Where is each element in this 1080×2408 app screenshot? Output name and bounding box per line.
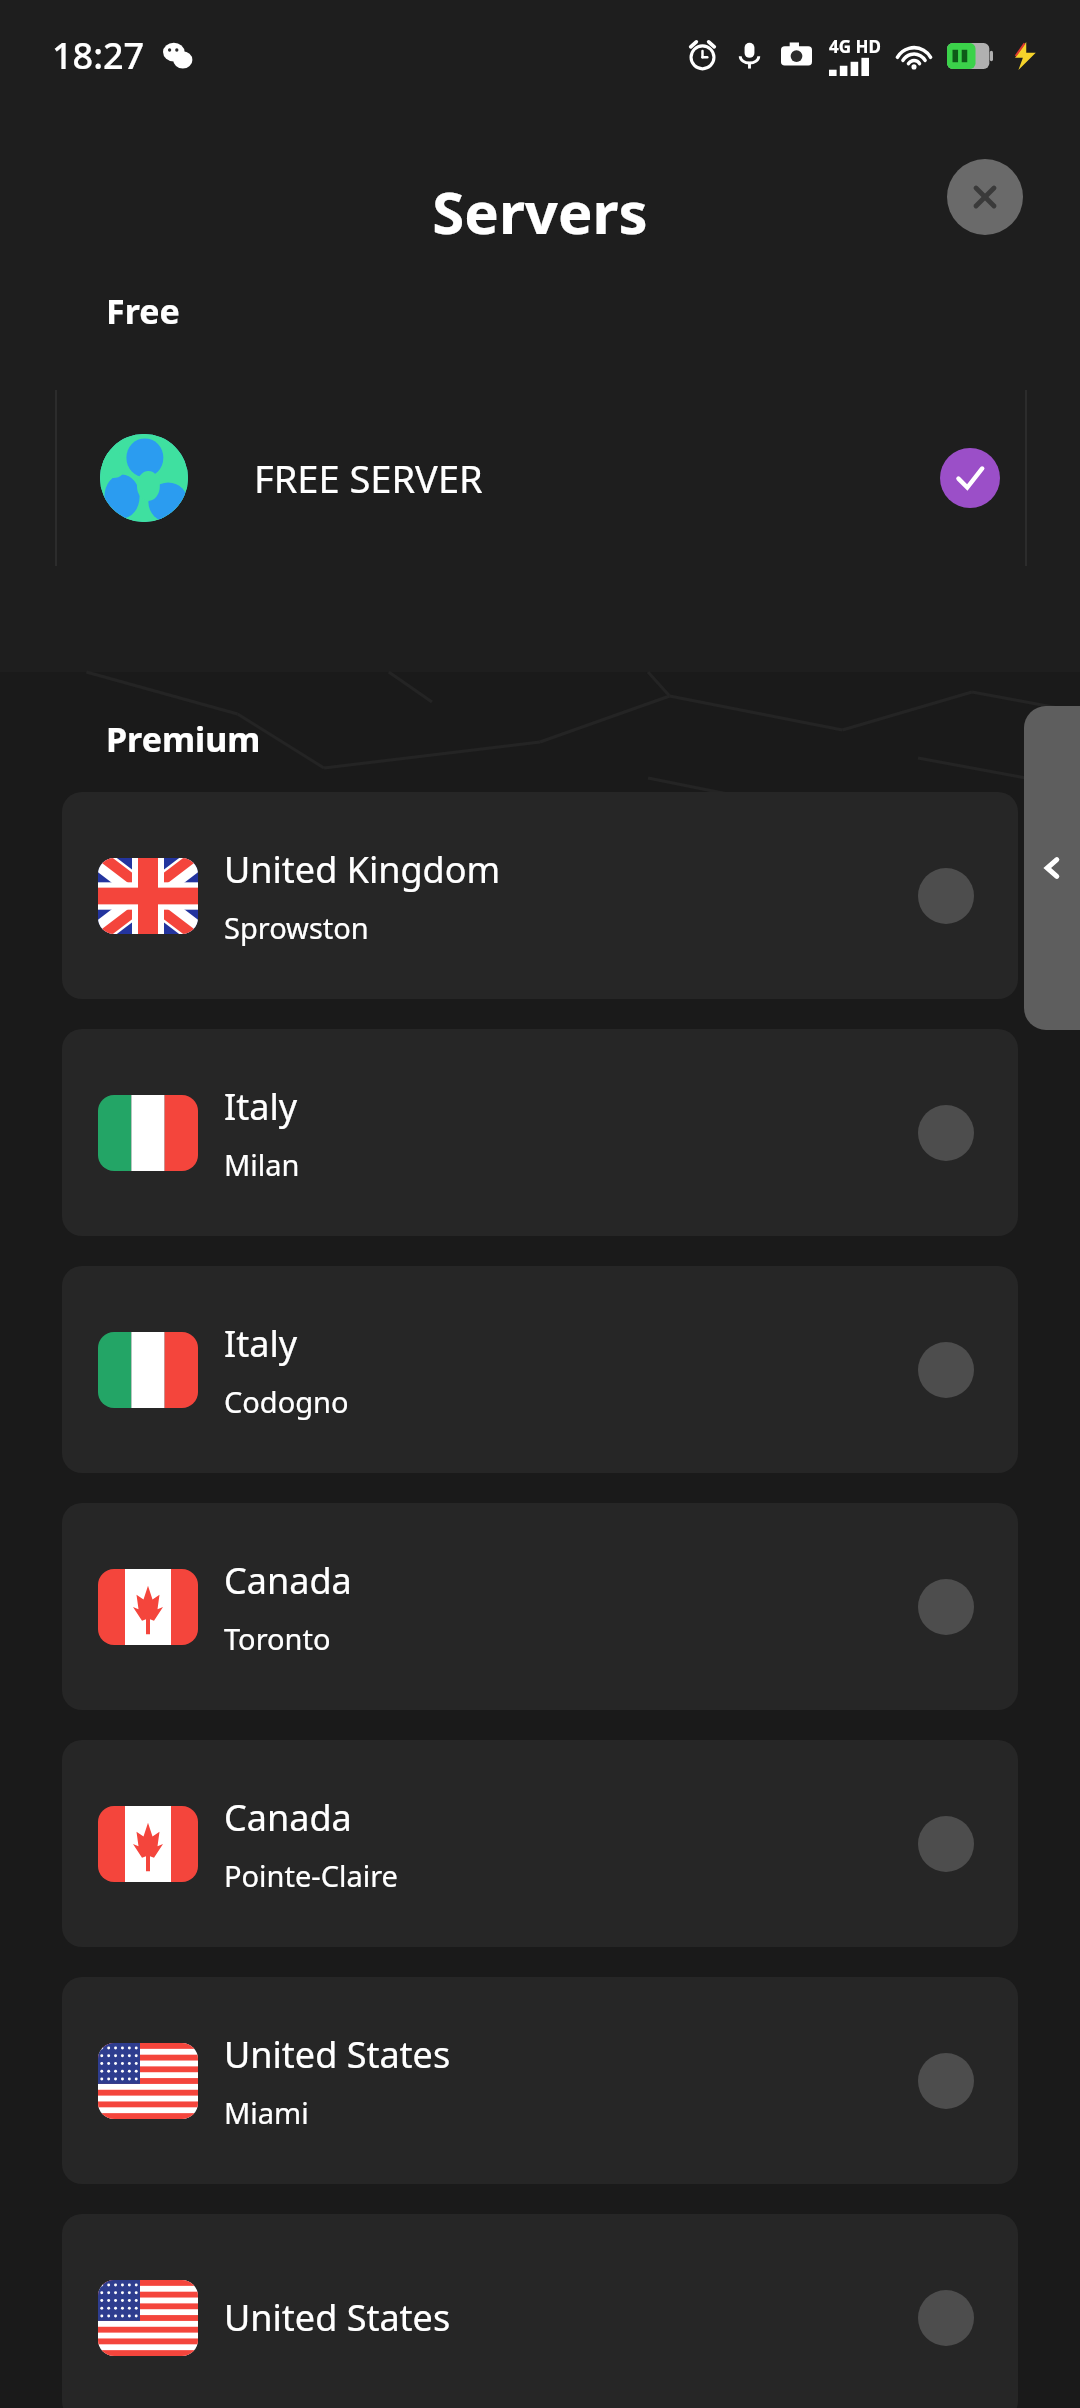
- button[interactable]: Italy: [62, 1029, 1018, 1236]
- staticText: 18:27: [52, 31, 145, 80]
- staticText: FREE SERVER: [254, 452, 483, 504]
- staticText: Codogno: [224, 1382, 349, 1421]
- button[interactable]: Italy: [62, 1266, 1018, 1473]
- staticText: Canada: [224, 1793, 352, 1842]
- staticText: Italy: [224, 1082, 298, 1131]
- staticText: Servers: [432, 172, 648, 251]
- staticText: United Kingdom: [224, 845, 501, 894]
- staticText: Italy: [224, 1319, 298, 1368]
- staticText: United States: [224, 2030, 451, 2079]
- button[interactable]: United States: [62, 1977, 1018, 2184]
- staticText: Premium: [106, 716, 261, 762]
- staticText: 4G HD: [829, 35, 881, 58]
- button[interactable]: United Kingdom: [62, 792, 1018, 999]
- button[interactable]: FREE SERVER: [0, 390, 1080, 566]
- staticText: Toronto: [224, 1619, 331, 1658]
- button[interactable]: Close: [947, 159, 1023, 235]
- staticText: United States: [224, 2293, 451, 2342]
- button[interactable]: Canada: [62, 1740, 1018, 1947]
- staticText: Free: [106, 288, 180, 334]
- staticText: Pointe-Claire: [224, 1856, 398, 1895]
- staticText: Sprowston: [224, 908, 369, 947]
- button[interactable]: United States: [62, 2214, 1018, 2408]
- staticText: Miami: [224, 2093, 309, 2132]
- staticText: Milan: [224, 1145, 300, 1184]
- staticText: Canada: [224, 1556, 352, 1605]
- button[interactable]: Canada: [62, 1503, 1018, 1710]
- button[interactable]: Open panel: [1024, 706, 1080, 1030]
